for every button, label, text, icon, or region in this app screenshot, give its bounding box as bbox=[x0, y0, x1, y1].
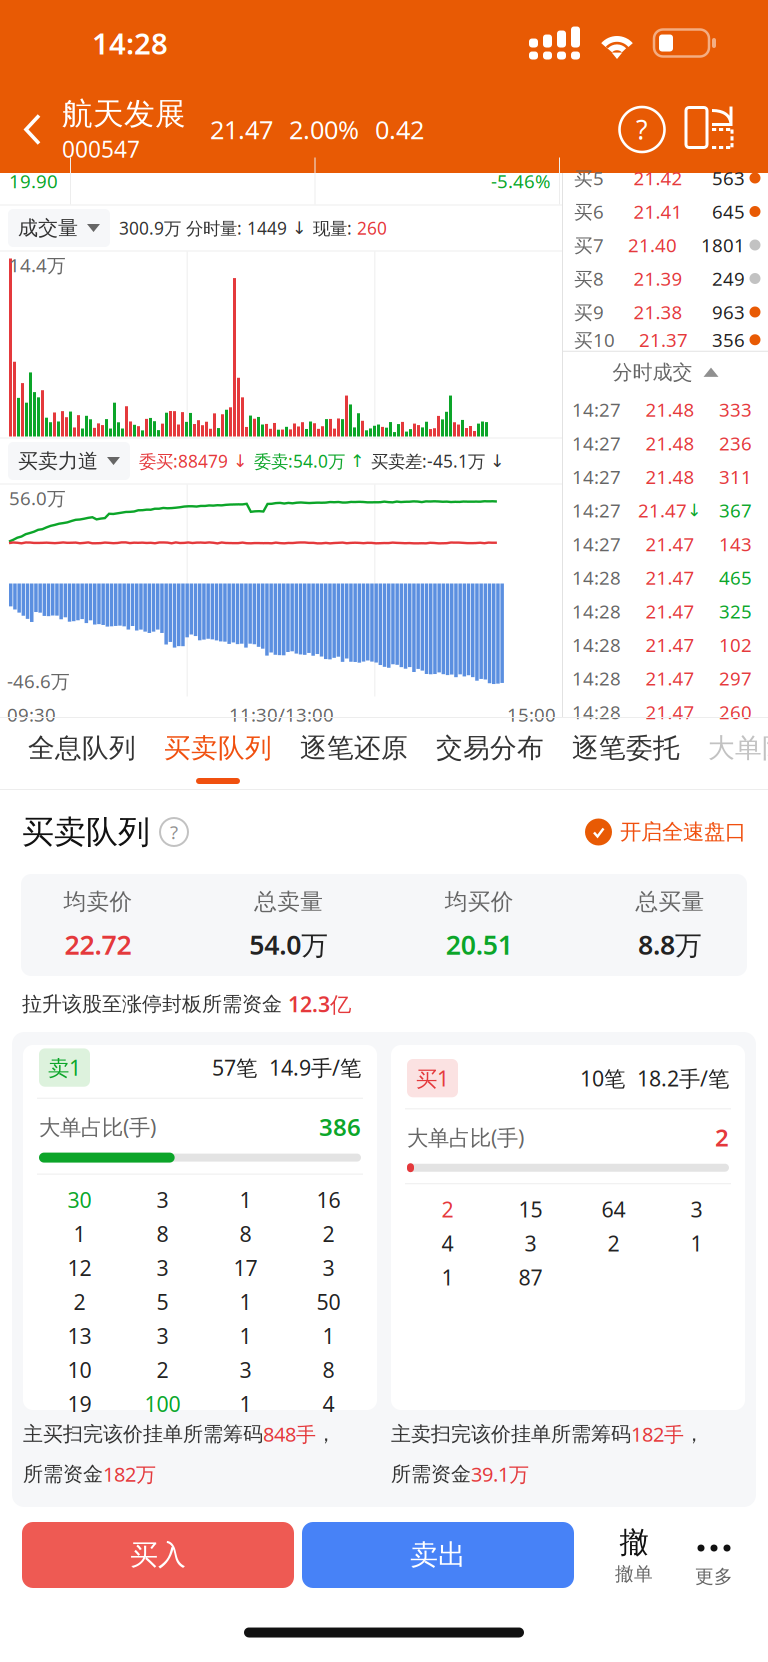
button[interactable]: 分时成交 bbox=[563, 352, 768, 393]
staticText: 2.00% bbox=[289, 113, 359, 146]
button[interactable]: 大单队列 bbox=[694, 718, 768, 789]
staticText: 14:28 bbox=[572, 700, 621, 724]
staticText: 21.41 bbox=[633, 199, 682, 224]
button[interactable]: 买卖力道 bbox=[0, 442, 130, 480]
staticText: 全息队列 bbox=[28, 732, 136, 764]
staticText: 100 bbox=[144, 1389, 180, 1418]
button[interactable]: 更多 bbox=[674, 1519, 754, 1591]
staticText: 均买价 bbox=[445, 888, 514, 916]
staticText: 21.42 bbox=[633, 166, 682, 190]
staticText: 21.47 bbox=[645, 666, 694, 691]
staticText: 21.47 bbox=[645, 700, 694, 724]
staticText: 8 bbox=[156, 1219, 168, 1248]
staticText: 10 bbox=[67, 1355, 91, 1384]
staticText: 1 bbox=[73, 1219, 85, 1248]
staticText: 5 bbox=[156, 1287, 168, 1316]
button[interactable]: 返回 bbox=[0, 86, 62, 173]
button[interactable]: 交易分布 bbox=[422, 718, 558, 789]
staticText: 均卖价 bbox=[63, 888, 132, 916]
staticText: 所需资金 bbox=[391, 1462, 471, 1486]
button[interactable]: 开启全速盘口 bbox=[585, 806, 768, 858]
staticText: ? bbox=[636, 112, 648, 147]
staticText: ， bbox=[316, 1422, 336, 1446]
staticText: 2 bbox=[156, 1355, 168, 1384]
button[interactable]: 帮助 bbox=[608, 93, 676, 165]
staticText: 356 bbox=[712, 327, 745, 352]
staticText: 14:28 bbox=[572, 565, 621, 590]
staticText: 182万 bbox=[103, 1461, 156, 1487]
button[interactable]: 说明 bbox=[150, 807, 198, 857]
button[interactable]: 全息队列 bbox=[14, 718, 150, 789]
staticText: 14:28 bbox=[572, 666, 621, 691]
staticText: 17 bbox=[233, 1253, 257, 1282]
staticText: 3 bbox=[322, 1253, 334, 1282]
staticText: 买6 bbox=[574, 199, 604, 224]
staticText: 19 bbox=[67, 1389, 91, 1418]
staticText: 买入 bbox=[130, 1538, 186, 1572]
staticText: 645 bbox=[712, 199, 745, 224]
staticText: 54.0万 bbox=[249, 927, 328, 962]
staticText: ↓ bbox=[292, 218, 313, 238]
staticText: 16 bbox=[316, 1185, 340, 1214]
button[interactable]: 撤 bbox=[594, 1519, 674, 1591]
staticText: 848手 bbox=[263, 1421, 316, 1447]
staticText: 0.42 bbox=[375, 113, 424, 146]
staticText: 委买:88479 bbox=[139, 449, 233, 472]
staticText: 09:30 bbox=[7, 702, 56, 727]
staticText: ↑ bbox=[350, 451, 371, 471]
staticText: 12.3亿 bbox=[288, 990, 351, 1018]
staticText: -46.6万 bbox=[7, 669, 70, 693]
staticText: 航天发展 bbox=[62, 95, 186, 133]
staticText: 开启全速盘口 bbox=[620, 819, 746, 845]
staticText: 撤 bbox=[619, 1524, 648, 1560]
staticText: 000547 bbox=[62, 134, 140, 164]
staticText: 21.39 bbox=[633, 266, 682, 291]
staticText: 3 bbox=[524, 1229, 536, 1257]
staticText: 4 bbox=[322, 1389, 334, 1418]
staticText: 50 bbox=[316, 1287, 340, 1316]
staticText: 367 bbox=[719, 498, 752, 523]
staticText: 21.38 bbox=[633, 300, 682, 324]
staticText: 买7 bbox=[574, 233, 604, 257]
staticText: 1 bbox=[239, 1389, 251, 1418]
staticText: 1 bbox=[322, 1321, 334, 1350]
staticText: ↓ bbox=[490, 451, 505, 471]
staticText: 分时成交 bbox=[612, 360, 692, 385]
button[interactable]: 逐笔委托 bbox=[558, 718, 694, 789]
button[interactable]: 买卖队列 bbox=[150, 718, 286, 789]
staticText: 325 bbox=[719, 599, 752, 624]
staticText: 2 bbox=[73, 1287, 85, 1316]
staticText: 所需资金 bbox=[23, 1462, 103, 1486]
staticText: 143 bbox=[719, 532, 752, 556]
staticText: 64 bbox=[601, 1195, 625, 1223]
staticText: 大单占比(手) bbox=[407, 1123, 524, 1151]
button[interactable]: 卖出 bbox=[302, 1522, 574, 1588]
staticText: 1 bbox=[239, 1321, 251, 1350]
staticText: 2 bbox=[607, 1229, 619, 1257]
staticText: ↓ bbox=[687, 500, 702, 520]
staticText: 3 bbox=[156, 1185, 168, 1214]
staticText: 386 bbox=[319, 1111, 361, 1143]
staticText: 260 bbox=[719, 700, 752, 724]
staticText: 委卖:54.0万 bbox=[254, 449, 350, 472]
staticText: 8 bbox=[239, 1219, 251, 1248]
staticText: 买9 bbox=[574, 300, 604, 324]
staticText: 买5 bbox=[574, 166, 604, 190]
button[interactable]: 逐笔还原 bbox=[286, 718, 422, 789]
button[interactable]: 买入 bbox=[22, 1522, 294, 1588]
staticText: 12 bbox=[67, 1253, 91, 1282]
staticText: 21.47 bbox=[645, 565, 694, 590]
button[interactable]: 分享 bbox=[676, 93, 768, 165]
staticText: 更多 bbox=[695, 1565, 733, 1588]
staticText: 14:28 bbox=[572, 599, 621, 624]
staticText: 1 bbox=[239, 1287, 251, 1316]
staticText: 总卖量 bbox=[254, 888, 323, 916]
staticText: 963 bbox=[712, 300, 745, 324]
staticText: 56.0万 bbox=[9, 485, 66, 510]
staticText: 21.47 bbox=[645, 632, 694, 657]
staticText: 3 bbox=[239, 1355, 251, 1384]
staticText: 逐笔还原 bbox=[300, 732, 408, 764]
staticText: 交易分布 bbox=[436, 732, 544, 764]
staticText: 20.51 bbox=[446, 927, 513, 962]
button[interactable]: 成交量 bbox=[0, 209, 110, 247]
